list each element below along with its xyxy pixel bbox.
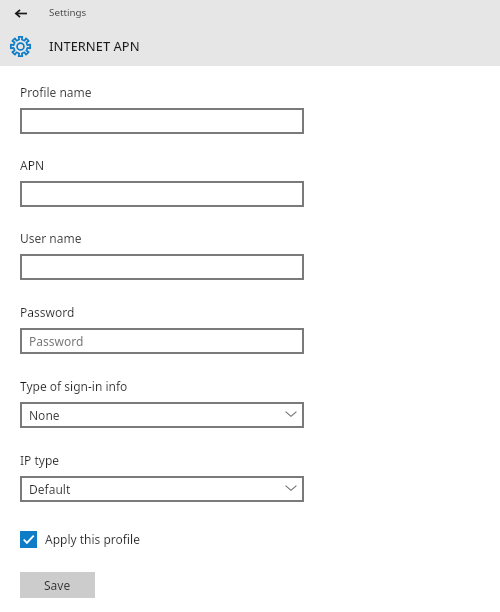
button[interactable]: User name <box>20 254 304 280</box>
button[interactable]: Password <box>20 328 304 354</box>
staticText: User name <box>20 230 82 246</box>
staticText: Settings <box>49 6 87 19</box>
staticText: None <box>29 407 60 423</box>
staticText: Save <box>44 577 71 593</box>
button[interactable]: Default <box>20 476 304 502</box>
button[interactable]: Save <box>20 572 95 598</box>
button[interactable]: Settings <box>44 1 87 23</box>
staticText: APN <box>20 157 45 173</box>
staticText: INTERNET APN <box>49 37 140 54</box>
staticText: Default <box>29 481 71 497</box>
button[interactable]: Apply this profile <box>20 530 140 548</box>
button[interactable]: None <box>20 402 304 428</box>
staticText: IP type <box>20 452 60 468</box>
staticText: Type of sign-in info <box>20 378 128 394</box>
button[interactable]: Profile name <box>20 108 304 134</box>
button[interactable]: Back <box>6 0 36 26</box>
other: Settings icon <box>10 36 31 57</box>
staticText: Password <box>29 333 84 349</box>
button[interactable]: APN <box>20 181 304 207</box>
staticText: Profile name <box>20 84 92 100</box>
staticText: Apply this profile <box>45 531 140 547</box>
staticText: Password <box>20 304 75 320</box>
